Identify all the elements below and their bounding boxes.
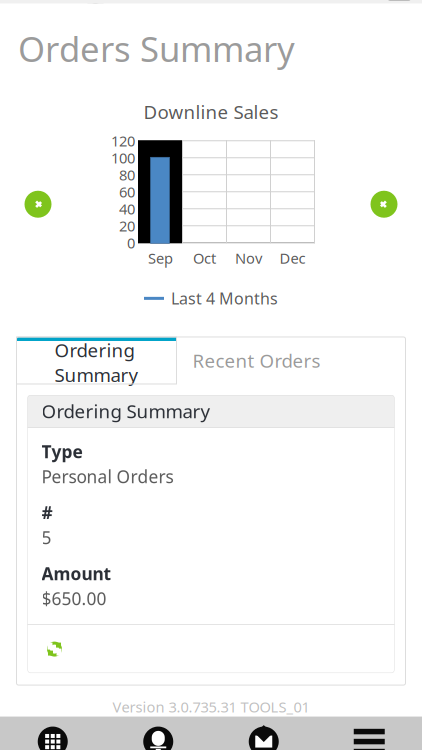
staticText: Personal Orders: [41, 465, 173, 488]
button[interactable]: Recent Orders: [176, 337, 336, 384]
staticText: Orders Summary: [18, 25, 295, 71]
staticText: Oct: [193, 248, 216, 268]
button[interactable]: Dashboard: [0, 725, 105, 750]
staticText: 80: [119, 165, 135, 184]
button[interactable]: Menu: [316, 725, 422, 750]
staticText: $650.00: [41, 587, 106, 610]
staticText: 120: [111, 131, 135, 150]
button[interactable]: Messages: [211, 725, 316, 750]
staticText: Amount: [41, 562, 111, 585]
staticText: Type: [41, 440, 82, 463]
staticText: Dec: [279, 248, 305, 268]
staticText: #: [41, 501, 52, 524]
button[interactable]: Refresh: [41, 632, 67, 666]
staticText: Downline Sales: [143, 99, 278, 124]
staticText: Recent Orders: [192, 348, 320, 373]
button[interactable]: Previous: [16, 182, 60, 226]
staticText: 0: [127, 233, 135, 252]
staticText: Sep: [148, 248, 173, 268]
button[interactable]: Next: [362, 182, 406, 226]
staticText: 60: [119, 182, 135, 201]
staticText: 5: [41, 526, 51, 549]
button[interactable]: Ordering Summary: [16, 337, 176, 384]
staticText: 40: [119, 199, 135, 218]
staticText: Carrier: [29, 0, 83, 4]
staticText: Last 4 Months: [171, 288, 278, 309]
staticText: Ordering Summary: [41, 399, 210, 423]
staticText: Ordering Summary: [54, 338, 138, 387]
button[interactable]: Notifications: [105, 725, 211, 750]
staticText: 4:46 PM: [215, 0, 275, 4]
staticText: Nov: [235, 248, 262, 268]
staticText: 100: [111, 148, 135, 167]
staticText: 20: [119, 216, 135, 235]
staticText: Version 3.0.735.31 TOOLS_01: [112, 697, 309, 717]
